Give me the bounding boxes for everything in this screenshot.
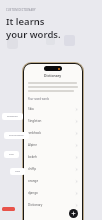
staticText: Dictionary: [44, 73, 62, 78]
staticText: bokeh: [28, 155, 37, 159]
staticText: Singleton: [28, 119, 42, 123]
button[interactable]: Save: [4, 151, 19, 158]
staticText: CUSTOM DICTIONARY: [6, 8, 36, 12]
staticText: Download: [7, 115, 18, 118]
button[interactable]: bokeh: [24, 151, 82, 163]
staticText: orange: [28, 179, 39, 183]
button[interactable]: Train: [10, 168, 25, 175]
staticText: Pronunciation: [9, 134, 24, 137]
button[interactable]: chiffp: [24, 163, 82, 175]
staticText: Your saved words: [28, 97, 50, 100]
staticText: your words.: [6, 28, 61, 41]
button[interactable]: webhook: [24, 127, 82, 139]
staticText: chiffp: [28, 167, 36, 171]
staticText: Train: [15, 170, 21, 173]
button[interactable]: orange: [24, 175, 82, 187]
staticText: Save: [9, 153, 14, 156]
button[interactable]: Download: [2, 113, 23, 120]
button[interactable]: Alpine: [24, 139, 82, 151]
staticText: Alpine: [28, 143, 37, 147]
staticText: webhook: [28, 131, 41, 135]
button[interactable]: Add word: [69, 209, 78, 218]
staticText: Dictionary: [28, 203, 43, 207]
staticText: Skia: [28, 107, 34, 111]
staticText: It learns: [6, 15, 45, 28]
button[interactable]: Skia: [24, 103, 82, 115]
button[interactable]: Dictionary: [24, 199, 82, 211]
button[interactable]: Singleton: [24, 115, 82, 127]
button[interactable]: Record: [2, 207, 15, 211]
staticText: django: [28, 191, 38, 195]
button[interactable]: Pronunciation: [4, 132, 29, 139]
button[interactable]: django: [24, 187, 82, 199]
